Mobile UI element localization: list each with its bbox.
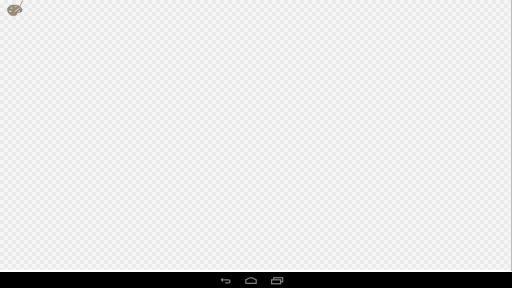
button[interactable]: Home [240,272,262,288]
button[interactable]: Recent apps [266,272,288,288]
button[interactable]: Color palette [6,0,24,18]
button[interactable]: Back [215,272,237,288]
